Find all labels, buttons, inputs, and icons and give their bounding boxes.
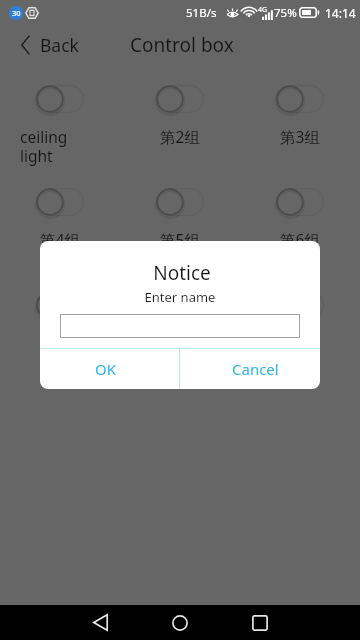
staticText: 4G (258, 5, 268, 15)
button[interactable]: 第3组 (240, 85, 360, 147)
button[interactable]: 第5组 (120, 188, 240, 250)
staticText: Cancel (232, 359, 279, 379)
button[interactable]: Cancel (180, 349, 320, 389)
button[interactable]: Back (0, 27, 93, 63)
staticText: 75% (274, 5, 297, 21)
button[interactable]: 第7组 (0, 291, 120, 353)
staticText: 第5组 (140, 229, 220, 250)
button[interactable] (60, 314, 300, 338)
button[interactable]: Home (156, 605, 204, 640)
staticText: 第9组 (260, 332, 340, 353)
staticText: OK (95, 359, 117, 379)
button[interactable]: 第4组 (0, 188, 120, 250)
staticText: 14:14 (325, 5, 356, 21)
staticText: 第6组 (260, 229, 340, 250)
staticText: 第8组 (140, 332, 220, 353)
button[interactable]: 第6组 (240, 188, 360, 250)
staticText: 第2组 (140, 126, 220, 147)
button[interactable]: Recent apps (236, 605, 284, 640)
button[interactable]: 第9组 (240, 291, 360, 353)
staticText: Control box (130, 32, 234, 58)
staticText: 第4组 (20, 229, 100, 250)
staticText: Enter name (40, 288, 320, 306)
button[interactable]: 第2组 (120, 85, 240, 147)
button[interactable]: Back (76, 605, 124, 640)
staticText: Back (40, 33, 79, 57)
staticText: 51B/s (186, 5, 217, 21)
staticText: Notice (42, 260, 320, 286)
staticText: 30 (12, 8, 21, 18)
button[interactable]: 第8组 (120, 291, 240, 353)
button[interactable]: OK (40, 349, 179, 389)
button[interactable]: ceiling light (0, 85, 120, 166)
staticText: ceiling light (20, 126, 100, 166)
staticText: 第3组 (260, 126, 340, 147)
staticText: 第7组 (20, 332, 100, 353)
